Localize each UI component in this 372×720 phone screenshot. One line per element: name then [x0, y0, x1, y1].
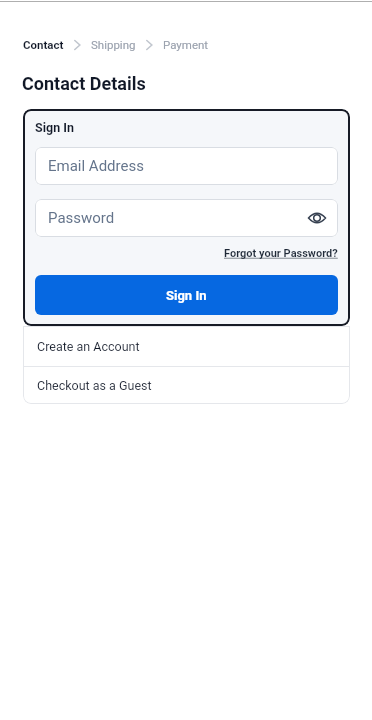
staticText: Create an Account — [37, 339, 140, 354]
button[interactable] — [307, 210, 327, 226]
staticText: Contact Details — [22, 73, 146, 94]
staticText: Sign In — [166, 288, 207, 303]
button[interactable]: Checkout as a Guest — [23, 367, 350, 404]
button[interactable]: Forgot your Password? — [224, 247, 338, 260]
button[interactable]: Sign In — [35, 275, 338, 315]
button[interactable]: Create an Account — [23, 326, 350, 366]
button[interactable]: Contact — [23, 38, 64, 51]
button[interactable]: Password — [35, 199, 338, 237]
button[interactable]: Shipping — [91, 38, 136, 51]
button[interactable]: Payment — [163, 38, 209, 51]
staticText: Email Address — [48, 157, 144, 175]
button[interactable]: Email Address — [35, 147, 338, 185]
staticText: Password — [48, 209, 115, 227]
staticText: Sign In — [35, 120, 74, 135]
staticText: Checkout as a Guest — [37, 378, 152, 393]
